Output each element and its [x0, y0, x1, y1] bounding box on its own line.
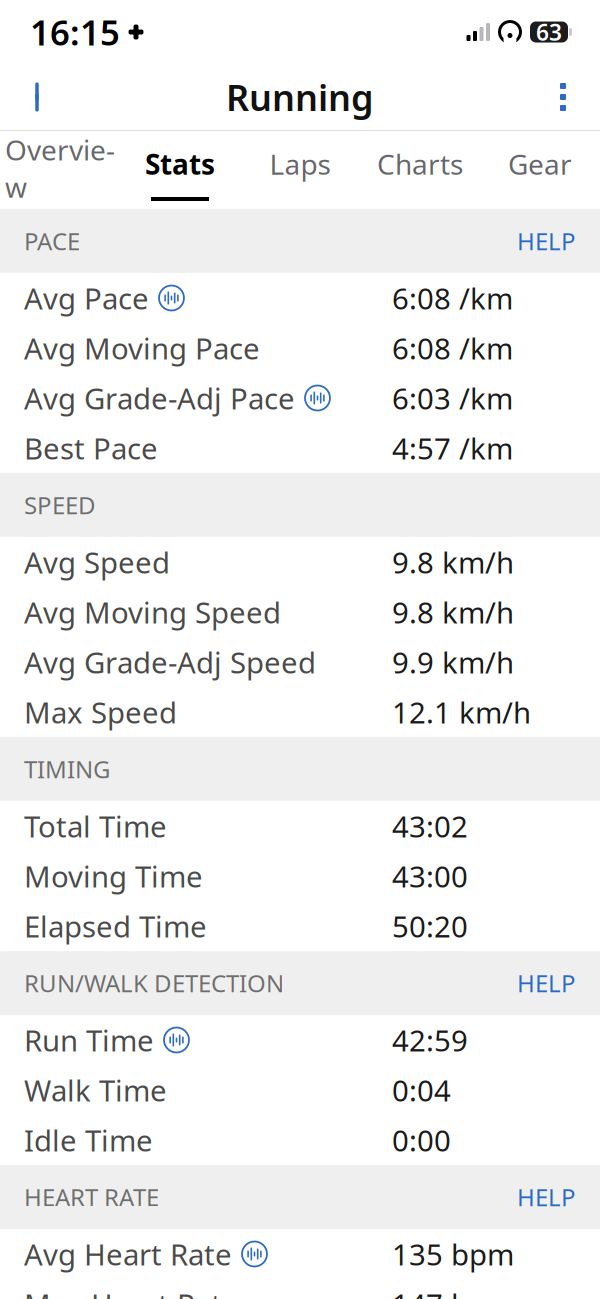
button[interactable]: Moving Time	[0, 851, 600, 901]
staticText: 12.1 km/h	[392, 692, 531, 731]
staticText: RUN/WALK DETECTION	[24, 967, 284, 999]
button[interactable]: Avg Speed	[0, 537, 600, 587]
staticText: Avg Grade-Adj Pace	[24, 378, 295, 417]
button[interactable]: Gear	[480, 131, 600, 209]
button[interactable]: Best Pace	[0, 423, 600, 473]
button[interactable]: Back	[14, 74, 60, 120]
staticText: SPEED	[24, 489, 96, 521]
staticText: Avg Grade-Adj Speed	[24, 642, 316, 681]
button[interactable]: Overview	[0, 131, 120, 209]
staticText: 9.8 km/h	[392, 592, 514, 631]
staticText: 6:08 /km	[392, 278, 513, 317]
staticText: Stats	[145, 145, 215, 183]
staticText: 0:04	[392, 1070, 451, 1109]
staticText: Avg Moving Pace	[24, 328, 260, 367]
staticText: HELP	[517, 967, 576, 999]
staticText: 4:57 /km	[392, 428, 513, 467]
button[interactable]: Walk Time	[0, 1065, 600, 1115]
button[interactable]: More options	[540, 74, 586, 120]
button[interactable]: Laps	[240, 131, 360, 209]
staticText: Max Speed	[24, 692, 177, 731]
button[interactable]: Idle Time	[0, 1115, 600, 1165]
button[interactable]: Max Speed	[0, 687, 600, 737]
staticText: 50:20	[392, 906, 468, 945]
button[interactable]: Avg Moving Pace	[0, 323, 600, 373]
staticText: PACE	[24, 225, 80, 257]
button[interactable]: Avg Pace	[0, 273, 600, 323]
button[interactable]: Stats	[120, 131, 240, 209]
button[interactable]: Max Heart Rate	[0, 1279, 600, 1299]
button[interactable]: Avg Heart Rate	[0, 1229, 600, 1279]
staticText: Elapsed Time	[24, 906, 207, 945]
staticText: 43:02	[392, 806, 468, 845]
staticText: 63	[536, 17, 562, 47]
button[interactable]: Avg Grade-Adj Speed	[0, 637, 600, 687]
staticText: 42:59	[392, 1020, 468, 1059]
staticText: Laps	[269, 145, 330, 183]
staticText: Idle Time	[24, 1120, 153, 1159]
button[interactable]: Elapsed Time	[0, 901, 600, 951]
staticText: Avg Moving Speed	[24, 592, 281, 631]
staticText: Run Time	[24, 1020, 154, 1059]
staticText: HEART RATE	[24, 1181, 159, 1213]
staticText: Avg Heart Rate	[24, 1234, 232, 1273]
button[interactable]: Total Time	[0, 801, 600, 851]
button[interactable]: HELP	[517, 967, 576, 999]
staticText: 9.9 km/h	[392, 642, 514, 681]
staticText: Avg Pace	[24, 278, 149, 317]
button[interactable]: Avg Grade-Adj Pace	[0, 373, 600, 423]
staticText: 147 bpm	[392, 1284, 514, 1299]
button[interactable]: HELP	[517, 1181, 576, 1213]
staticText: 0:00	[392, 1120, 451, 1159]
staticText: Total Time	[24, 806, 167, 845]
staticText: 43:00	[392, 856, 468, 895]
button[interactable]: HELP	[517, 225, 576, 257]
staticText: Avg Speed	[24, 542, 170, 581]
button[interactable]: Avg Moving Speed	[0, 587, 600, 637]
staticText: 9.8 km/h	[392, 542, 514, 581]
button[interactable]: Run Time	[0, 1015, 600, 1065]
button[interactable]: Charts	[360, 131, 480, 209]
staticText: 135 bpm	[392, 1234, 514, 1273]
staticText: Moving Time	[24, 856, 203, 895]
staticText: Charts	[377, 145, 463, 183]
staticText: Walk Time	[24, 1070, 167, 1109]
staticText: 6:03 /km	[392, 378, 513, 417]
staticText: HELP	[517, 225, 576, 257]
staticText: Gear	[508, 145, 572, 183]
staticText: Max Heart Rate	[24, 1284, 239, 1299]
staticText: 16:15	[30, 9, 120, 55]
staticText: Running	[226, 73, 374, 121]
staticText: Best Pace	[24, 428, 158, 467]
staticText: 6:08 /km	[392, 328, 513, 367]
staticText: TIMING	[24, 753, 110, 785]
staticText: Overview	[5, 131, 115, 205]
staticText: HELP	[517, 1181, 576, 1213]
